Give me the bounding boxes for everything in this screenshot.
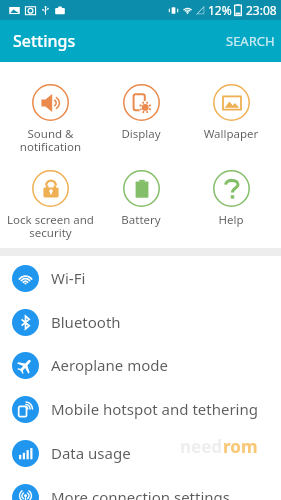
button[interactable]: Wi-Fi	[0, 256, 281, 300]
staticText: Display	[96, 126, 186, 142]
staticText: 23:08	[246, 2, 277, 18]
staticText: Help	[186, 212, 276, 228]
button[interactable]: SEARCH	[220, 22, 281, 60]
button[interactable]: Data usage	[0, 431, 281, 475]
staticText: Bluetooth	[51, 312, 121, 332]
staticText: Aeroplane mode	[51, 355, 168, 375]
button[interactable]: More connection settings	[0, 475, 281, 500]
staticText: Sound & notification	[5, 126, 96, 155]
button[interactable]: Bluetooth	[0, 300, 281, 344]
staticText: SEARCH	[226, 32, 275, 50]
staticText: rom	[223, 435, 258, 458]
button[interactable]: Display	[96, 62, 186, 148]
button[interactable]: Mobile hotspot and tethering	[0, 387, 281, 431]
staticText: Settings	[13, 30, 76, 52]
staticText: Data usage	[51, 443, 131, 463]
button[interactable]: Lock screen and security	[5, 148, 96, 234]
staticText: More connection settings	[51, 487, 230, 500]
button[interactable]: Aeroplane mode	[0, 343, 281, 387]
staticText: Battery	[96, 212, 186, 228]
button[interactable]: Wallpaper	[186, 62, 276, 148]
staticText: 12%	[208, 2, 232, 18]
staticText: Lock screen and security	[5, 212, 96, 241]
button[interactable]: Help	[186, 148, 276, 234]
button[interactable]: Battery	[96, 148, 186, 234]
staticText: need	[180, 435, 223, 458]
button[interactable]: Sound & notification	[5, 62, 96, 148]
staticText: Wi-Fi	[51, 268, 86, 288]
staticText: Mobile hotspot and tethering	[51, 399, 258, 419]
staticText: Wallpaper	[186, 126, 276, 142]
